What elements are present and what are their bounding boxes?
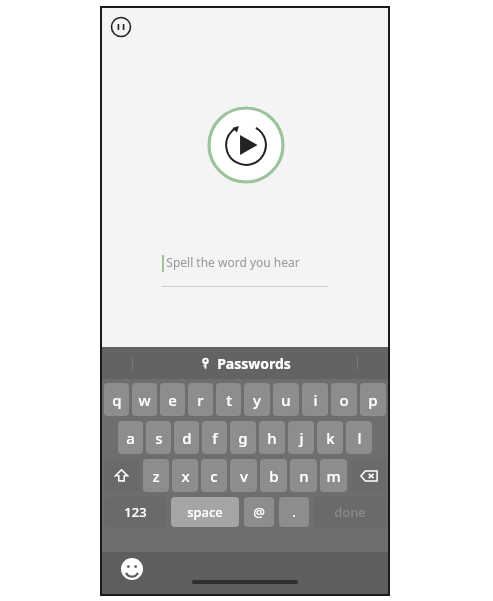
button[interactable]: a [118, 421, 143, 454]
button[interactable]: 123 [104, 497, 166, 527]
staticText: 123 [124, 503, 147, 521]
button[interactable]: done [314, 497, 386, 527]
button[interactable]: @ [244, 497, 274, 527]
staticText: u [281, 390, 291, 410]
button[interactable]: m [320, 459, 347, 492]
staticText: . [292, 503, 296, 521]
staticText: m [326, 466, 341, 486]
staticText: g [238, 428, 248, 448]
staticText: r [197, 390, 204, 410]
staticText: a [126, 428, 135, 448]
button[interactable]: Backspace [351, 459, 386, 492]
button[interactable]: n [290, 459, 317, 492]
button[interactable]: Passwords [102, 347, 388, 379]
button[interactable]: h [259, 421, 285, 454]
staticText: q [112, 390, 122, 410]
staticText: z [152, 466, 160, 486]
staticText: k [326, 428, 335, 448]
button[interactable]: v [230, 459, 257, 492]
button[interactable]: q [104, 383, 129, 416]
staticText: s [155, 428, 163, 448]
staticText: j [299, 428, 304, 448]
button[interactable]: w [132, 383, 157, 416]
staticText: done [334, 503, 366, 521]
staticText: t [226, 390, 232, 410]
staticText: y [253, 390, 261, 410]
staticText: h [267, 428, 277, 448]
button[interactable]: space [171, 497, 239, 527]
button[interactable]: f [202, 421, 227, 454]
staticText: l [357, 428, 362, 448]
button[interactable]: r [188, 383, 213, 416]
button[interactable]: Shift [104, 459, 139, 492]
button[interactable]: Pause [110, 16, 132, 38]
button[interactable]: z [143, 459, 169, 492]
staticText: b [269, 466, 279, 486]
button[interactable]: s [146, 421, 171, 454]
staticText: Passwords [217, 354, 291, 373]
staticText: c [210, 466, 218, 486]
button[interactable]: g [230, 421, 256, 454]
staticText: x [181, 466, 190, 486]
button[interactable]: b [260, 459, 287, 492]
staticText: space [187, 503, 223, 521]
staticText: i [313, 390, 318, 410]
staticText: w [138, 390, 151, 410]
staticText: p [368, 390, 378, 410]
button[interactable]: y [244, 383, 270, 416]
button[interactable]: c [201, 459, 227, 492]
button[interactable]: o [331, 383, 357, 416]
staticText: Spell the word you hear [166, 254, 300, 270]
button[interactable]: d [174, 421, 199, 454]
staticText: o [339, 390, 349, 410]
staticText: e [168, 390, 177, 410]
staticText: f [212, 428, 218, 448]
button[interactable]: k [317, 421, 343, 454]
staticText: d [182, 428, 192, 448]
button[interactable]: e [160, 383, 185, 416]
button[interactable]: i [302, 383, 328, 416]
button[interactable]: u [273, 383, 299, 416]
button[interactable]: t [216, 383, 241, 416]
staticText: n [299, 466, 309, 486]
staticText: @ [253, 503, 265, 521]
button[interactable]: . [279, 497, 309, 527]
button[interactable]: Play audio [207, 106, 285, 184]
staticText: v [240, 466, 248, 486]
button[interactable]: Emoji [121, 558, 143, 580]
button[interactable]: x [172, 459, 198, 492]
button[interactable]: Spell the word you hear [162, 253, 328, 287]
button[interactable]: p [360, 383, 386, 416]
button[interactable]: l [346, 421, 372, 454]
button[interactable]: j [288, 421, 314, 454]
